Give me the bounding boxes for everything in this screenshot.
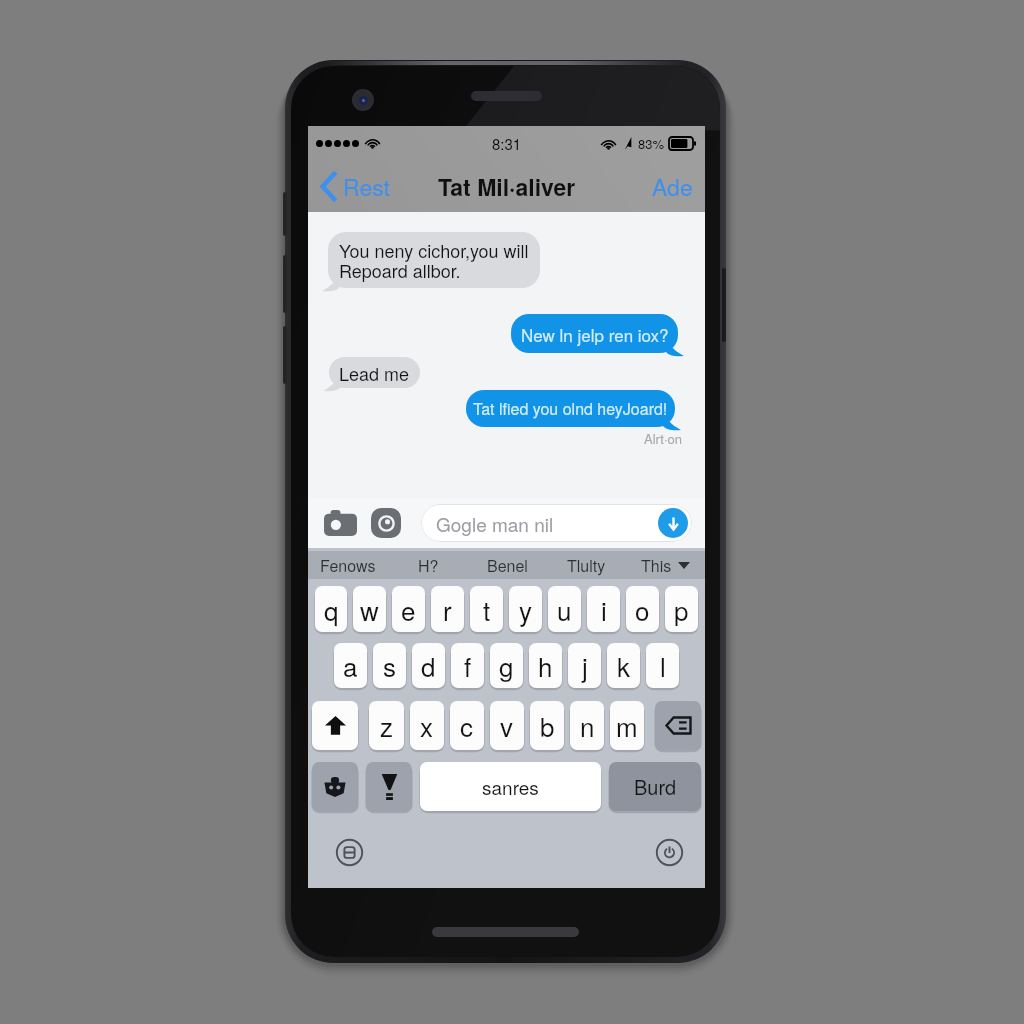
button[interactable]: Emoji xyxy=(312,762,358,811)
staticText: t xyxy=(483,591,491,628)
button[interactable]: k xyxy=(607,643,640,688)
staticText: r xyxy=(443,591,452,628)
button[interactable]: p xyxy=(665,586,698,632)
staticText: b xyxy=(540,707,555,744)
button[interactable]: j xyxy=(568,643,601,688)
button[interactable]: New ln jelp ren iox? xyxy=(511,314,678,353)
staticText: Fenows xyxy=(320,554,376,577)
button[interactable]: v xyxy=(490,701,524,750)
button[interactable]: Keyboard layout xyxy=(336,839,363,866)
staticText: x xyxy=(420,707,434,744)
button[interactable]: Shift xyxy=(312,701,358,750)
staticText: Benel xyxy=(487,554,528,577)
staticText: This xyxy=(641,554,672,577)
staticText: w xyxy=(360,591,379,628)
button[interactable]: i xyxy=(587,586,620,632)
staticText: New ln jelp ren iox? xyxy=(521,322,669,346)
staticText: Tat Mil·aliver xyxy=(438,170,576,203)
button[interactable]: f xyxy=(451,643,484,688)
staticText: 83% xyxy=(638,134,665,153)
staticText: k xyxy=(617,647,631,684)
button[interactable]: Lead me xyxy=(329,357,420,388)
staticText: y xyxy=(519,591,533,628)
staticText: You neny cichor,you will Repoard allbor. xyxy=(339,237,529,283)
staticText: l xyxy=(660,647,666,684)
button[interactable]: g xyxy=(490,643,523,688)
staticText: Gogle man nil xyxy=(436,510,554,537)
staticText: j xyxy=(582,647,588,684)
button[interactable]: Gogle man nil xyxy=(421,504,692,542)
button[interactable]: Tlulty xyxy=(547,551,626,579)
button[interactable]: x xyxy=(410,701,444,750)
button[interactable]: Benel xyxy=(468,551,547,579)
staticText: f xyxy=(464,647,472,684)
button[interactable]: Burd xyxy=(609,762,701,811)
staticText: i xyxy=(601,591,607,628)
button[interactable]: Fenows xyxy=(308,551,388,579)
button[interactable]: b xyxy=(530,701,564,750)
button[interactable]: This xyxy=(626,551,705,579)
staticText: z xyxy=(380,707,394,744)
staticText: Tat lfied you olnd heyJoard! xyxy=(473,397,668,420)
staticText: a xyxy=(343,647,358,684)
button[interactable]: Symbols xyxy=(366,762,412,811)
button[interactable]: n xyxy=(570,701,604,750)
staticText: H? xyxy=(418,554,439,577)
button[interactable]: w xyxy=(353,586,386,632)
staticText: Tlulty xyxy=(567,554,606,577)
staticText: p xyxy=(674,591,689,628)
button[interactable]: z xyxy=(369,701,404,750)
button[interactable]: Send xyxy=(658,508,688,538)
button[interactable]: s xyxy=(373,643,406,688)
staticText: q xyxy=(324,591,339,628)
button[interactable]: Rest xyxy=(308,170,396,203)
button[interactable]: Hide keyboard xyxy=(656,839,683,866)
button[interactable]: Tat lfied you olnd heyJoard! xyxy=(466,390,675,427)
staticText: g xyxy=(499,647,514,684)
button[interactable]: a xyxy=(334,643,367,688)
staticText: e xyxy=(401,591,416,628)
button[interactable]: l xyxy=(646,643,679,688)
staticText: o xyxy=(635,591,650,628)
staticText: m xyxy=(616,707,638,744)
staticText: h xyxy=(538,647,553,684)
staticText: n xyxy=(580,707,595,744)
staticText: d xyxy=(421,647,436,684)
button[interactable]: h xyxy=(529,643,562,688)
button[interactable]: t xyxy=(470,586,503,632)
button[interactable]: e xyxy=(392,586,425,632)
button[interactable]: u xyxy=(548,586,581,632)
button[interactable]: c xyxy=(450,701,484,750)
button[interactable]: Camera xyxy=(323,509,357,537)
button[interactable]: q xyxy=(315,586,347,632)
staticText: 8:31 xyxy=(492,133,522,154)
button[interactable]: d xyxy=(412,643,445,688)
button[interactable]: Backspace xyxy=(655,701,701,750)
staticText: s xyxy=(383,647,397,684)
staticText: Rest xyxy=(343,170,390,203)
button[interactable]: Ade xyxy=(652,170,705,203)
staticText: v xyxy=(500,707,514,744)
staticText: sanres xyxy=(482,773,539,800)
staticText: Alrt·on xyxy=(644,429,682,448)
button[interactable]: sanres xyxy=(420,762,601,811)
staticText: Lead me xyxy=(339,360,410,386)
staticText: u xyxy=(557,591,572,628)
staticText: c xyxy=(460,707,474,744)
button[interactable]: o xyxy=(626,586,659,632)
button[interactable]: You neny cichor,you will Repoard allbor. xyxy=(328,232,540,288)
button[interactable]: r xyxy=(431,586,464,632)
button[interactable]: Apps xyxy=(371,508,401,538)
button[interactable]: m xyxy=(610,701,644,750)
staticText: Burd xyxy=(634,772,677,801)
button[interactable]: y xyxy=(509,586,542,632)
button[interactable]: H? xyxy=(388,551,468,579)
